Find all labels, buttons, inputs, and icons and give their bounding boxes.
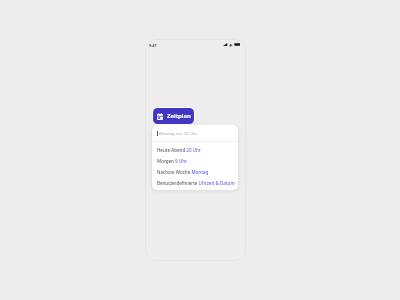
- staticText: Heute Abend 20 Uhr: [157, 147, 201, 153]
- other: Signal, Wi-Fi and battery status: [223, 43, 240, 46]
- staticText: Montag um 10 Uhr: [159, 130, 198, 136]
- button[interactable]: Heute Abend 20 Uhr: [152, 144, 238, 155]
- button[interactable]: Nächste Woche Montag: [152, 166, 238, 177]
- staticText: Benutzerdefinierte Uhrzeit & Datum: [157, 180, 235, 186]
- button[interactable]: Benutzerdefinierte Uhrzeit & Datum: [152, 177, 238, 188]
- button[interactable]: Morgen 9 Uhr: [152, 155, 238, 166]
- staticText: Nächste Woche Montag: [157, 169, 209, 175]
- staticText: Morgen 9 Uhr: [157, 158, 187, 164]
- button[interactable]: Zeitplan: [153, 108, 194, 124]
- staticText: Zeitplan: [167, 112, 191, 120]
- staticText: 9:41: [149, 43, 157, 48]
